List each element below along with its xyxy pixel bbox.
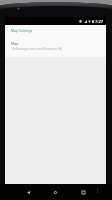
staticText: Volkswagen tech and Stratarea HK xyxy=(12,47,62,51)
button[interactable]: Back xyxy=(22,186,34,198)
button[interactable]: Home xyxy=(49,186,61,198)
button[interactable]: More options xyxy=(92,186,102,196)
staticText: Map Settings xyxy=(11,28,33,33)
staticText: Map xyxy=(11,41,19,46)
button[interactable] xyxy=(5,25,106,37)
button[interactable]: Recent apps xyxy=(77,186,89,198)
staticText: 7:27 xyxy=(95,19,103,24)
button[interactable] xyxy=(5,38,106,57)
